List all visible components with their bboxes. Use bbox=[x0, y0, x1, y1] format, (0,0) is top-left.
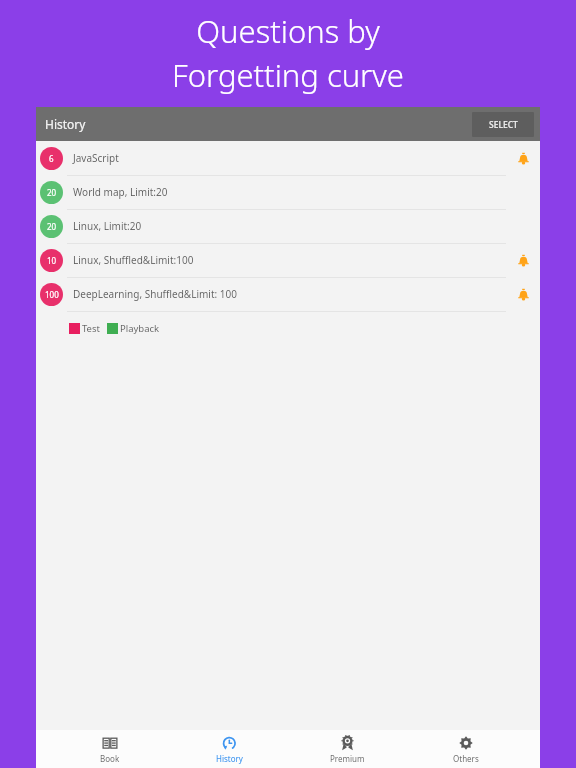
button[interactable]: 6 bbox=[36, 141, 540, 175]
staticText: JavaScript bbox=[73, 151, 119, 165]
button[interactable]: History bbox=[184, 730, 274, 768]
button[interactable]: 20 bbox=[36, 209, 540, 243]
button[interactable]: 100 bbox=[36, 277, 540, 311]
staticText: Linux, Limit:20 bbox=[73, 219, 142, 233]
button[interactable]: 20 bbox=[36, 175, 540, 209]
button[interactable]: Premium bbox=[302, 730, 392, 768]
button[interactable]: Notification bbox=[506, 141, 540, 175]
staticText: Questions by bbox=[196, 10, 380, 52]
button[interactable]: 10 bbox=[36, 243, 540, 277]
staticText: Test bbox=[82, 322, 100, 335]
staticText: Forgetting curve bbox=[172, 54, 404, 96]
staticText: Linux, Shuffled&Limit:100 bbox=[73, 253, 194, 267]
staticText: Book bbox=[100, 753, 120, 764]
button[interactable]: Others bbox=[421, 730, 511, 768]
button[interactable]: SELECT bbox=[472, 112, 534, 137]
staticText: 100 bbox=[45, 289, 59, 300]
staticText: 20 bbox=[47, 187, 57, 198]
staticText: 10 bbox=[47, 255, 57, 266]
staticText: 6 bbox=[49, 153, 54, 164]
button[interactable]: Notification bbox=[506, 243, 540, 277]
button[interactable]: Book bbox=[65, 730, 155, 768]
staticText: History bbox=[45, 116, 86, 132]
staticText: Premium bbox=[330, 753, 365, 764]
staticText: History bbox=[216, 753, 243, 764]
staticText: Playback bbox=[120, 322, 160, 335]
staticText: World map, Limit:20 bbox=[73, 185, 168, 199]
staticText: 20 bbox=[47, 221, 57, 232]
staticText: DeepLearning, Shuffled&Limit: 100 bbox=[73, 287, 237, 301]
staticText: Others bbox=[453, 753, 479, 764]
staticText: SELECT bbox=[489, 119, 518, 131]
button[interactable]: Notification bbox=[506, 277, 540, 311]
